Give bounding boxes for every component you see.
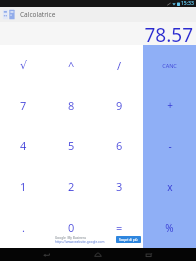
other: Calcolatrice icon: [2, 9, 16, 20]
staticText: 78.57: [144, 22, 193, 45]
button[interactable]: Google My Business: [53, 233, 143, 246]
button[interactable]: =: [95, 207, 143, 248]
staticText: 9: [116, 98, 123, 113]
button[interactable]: 0: [47, 207, 95, 248]
staticText: https://www.website-google.com: [55, 240, 105, 244]
staticText: 1: [20, 179, 27, 194]
staticText: 7: [20, 98, 27, 113]
staticText: 0: [68, 220, 75, 235]
staticText: ^: [68, 58, 75, 73]
staticText: /: [117, 58, 122, 73]
button[interactable]: .: [0, 207, 47, 248]
button[interactable]: 7: [0, 85, 47, 125]
staticText: 3: [116, 179, 123, 194]
button[interactable]: 9: [95, 85, 143, 125]
staticText: %: [165, 221, 174, 235]
button[interactable]: -: [143, 125, 196, 166]
button[interactable]: Home: [91, 248, 105, 261]
staticText: CANC: [162, 62, 177, 69]
staticText: .: [22, 220, 25, 235]
button[interactable]: 5: [47, 125, 95, 166]
staticText: +: [167, 98, 173, 112]
staticText: x: [167, 180, 173, 194]
staticText: Calcolatrice: [20, 10, 56, 19]
staticText: 2: [68, 179, 75, 194]
button[interactable]: ^: [47, 45, 95, 85]
staticText: 8: [68, 98, 75, 113]
button[interactable]: +: [143, 85, 196, 125]
button[interactable]: 3: [95, 166, 143, 207]
button[interactable]: x: [143, 166, 196, 207]
staticText: 5: [68, 138, 75, 153]
staticText: √: [20, 59, 28, 72]
button[interactable]: 2: [47, 166, 95, 207]
button[interactable]: Recent apps: [142, 248, 156, 261]
staticText: Scopri di più: [119, 238, 138, 242]
staticText: 15:33: [181, 0, 194, 7]
button[interactable]: Back: [40, 248, 54, 261]
button[interactable]: Scopri di più: [116, 236, 141, 243]
button[interactable]: 1: [0, 166, 47, 207]
staticText: 4: [20, 138, 27, 153]
button[interactable]: 6: [95, 125, 143, 166]
staticText: 6: [116, 138, 123, 153]
button[interactable]: %: [143, 207, 196, 248]
staticText: -: [168, 139, 172, 153]
button[interactable]: √: [0, 45, 47, 85]
staticText: Google My Business: [55, 236, 86, 240]
staticText: =: [116, 220, 123, 235]
button[interactable]: 8: [47, 85, 95, 125]
button[interactable]: 4: [0, 125, 47, 166]
button[interactable]: CANC: [143, 45, 196, 85]
button[interactable]: /: [95, 45, 143, 85]
